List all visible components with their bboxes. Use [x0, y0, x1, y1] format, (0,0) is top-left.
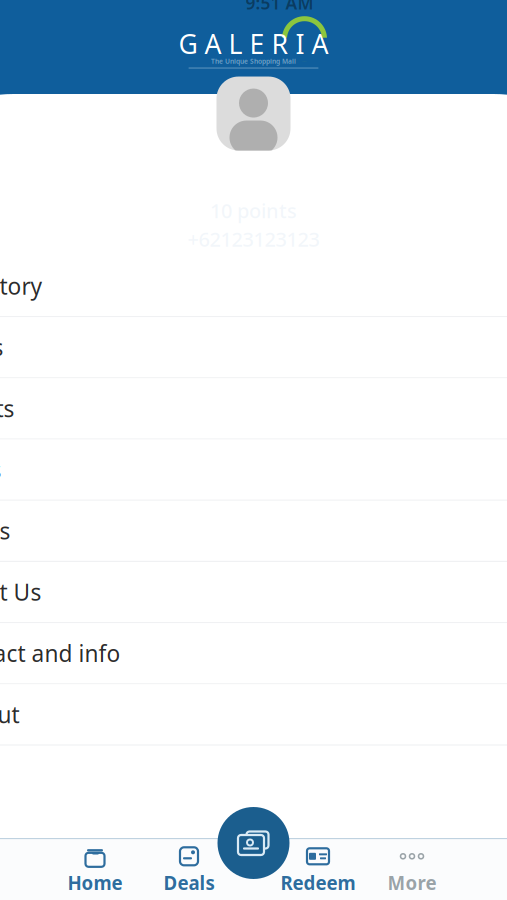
staticText: Contact and info — [0, 638, 120, 668]
staticText: 9:51 AM — [245, 0, 313, 14]
button[interactable]: Redeem — [271, 839, 365, 900]
button[interactable]: Points — [0, 501, 507, 561]
staticText: Logout — [0, 699, 19, 729]
button[interactable]: Deals — [0, 317, 507, 377]
staticText: Directory — [0, 271, 42, 301]
button[interactable]: Directory — [0, 256, 507, 316]
staticText: Deals — [0, 332, 3, 362]
button[interactable]: Events — [0, 378, 507, 438]
staticText: The Unique Shopping Mall — [211, 57, 296, 66]
button[interactable]: Home — [48, 839, 142, 900]
button[interactable]: More — [365, 839, 459, 900]
button[interactable]: Deals — [142, 839, 236, 900]
staticText: 10 points — [210, 197, 297, 224]
staticText: Points — [0, 516, 10, 546]
button[interactable]: Gallery — [217, 807, 289, 879]
staticText: Deals — [163, 870, 214, 895]
staticText: +62123123123 — [187, 226, 319, 252]
staticText: Home — [67, 870, 122, 895]
button[interactable]: i — [0, 623, 507, 683]
staticText: About Us — [0, 577, 41, 607]
staticText: More — [387, 870, 436, 895]
staticText: News — [0, 454, 1, 485]
staticText: G A L E R I A — [178, 26, 328, 61]
button[interactable]: Logout — [0, 684, 507, 744]
button[interactable]: About Us — [0, 562, 507, 622]
staticText: Redeem — [280, 870, 355, 895]
staticText: Events — [0, 393, 14, 423]
